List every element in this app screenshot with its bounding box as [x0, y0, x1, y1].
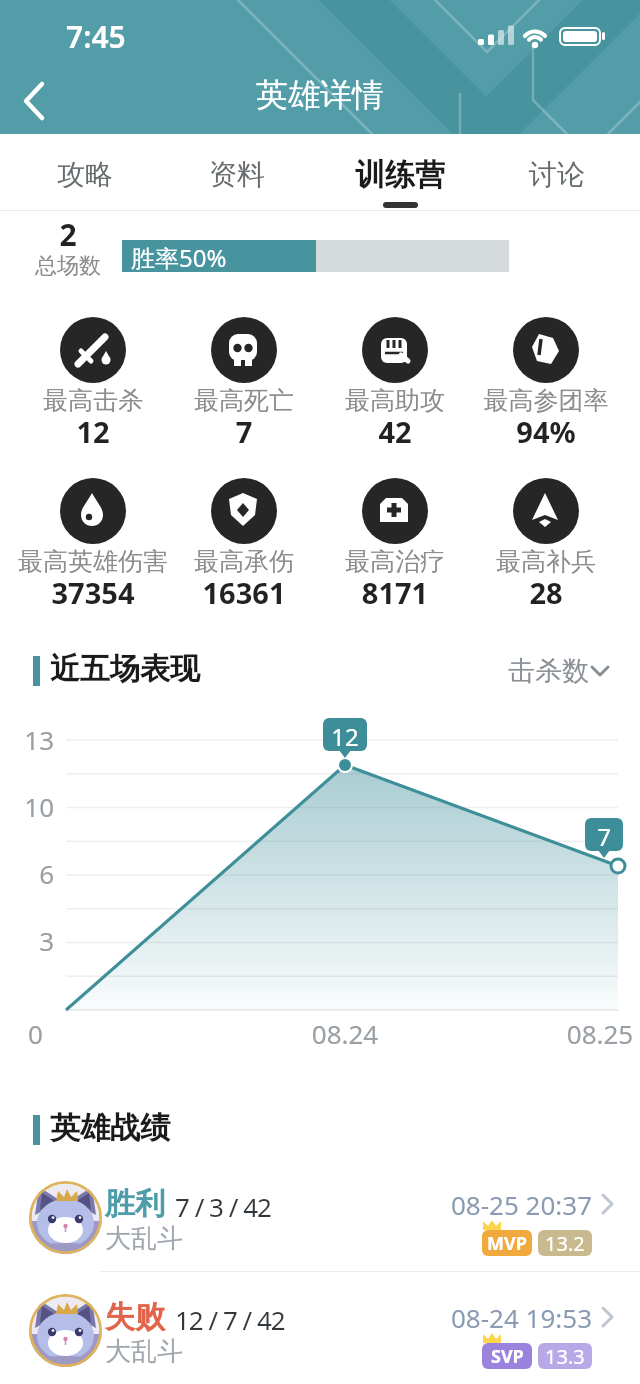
staticText: SVP — [491, 1344, 524, 1369]
staticText: 7 — [585, 820, 623, 853]
staticText: 08-24 19:53 — [420, 1300, 592, 1335]
staticText: 训练营 — [355, 156, 445, 194]
staticText: 攻略 — [57, 157, 113, 192]
staticText: 16361 — [164, 573, 324, 612]
button[interactable]: 讨论 — [497, 134, 617, 211]
button[interactable]: 训练营 — [340, 134, 460, 211]
staticText: 最高击杀 — [13, 385, 173, 416]
staticText: 最高英雄伤害 — [13, 546, 173, 577]
staticText: 8171 — [315, 573, 475, 612]
staticText: 12 — [323, 720, 367, 753]
button[interactable] — [10, 76, 62, 128]
staticText: 大乱斗 — [105, 1335, 183, 1368]
staticText: 击杀数 — [508, 654, 589, 688]
staticText: 08-25 20:37 — [420, 1187, 592, 1222]
staticText: MVP — [487, 1231, 527, 1256]
staticText: 胜利 — [105, 1185, 165, 1223]
staticText: 13.3 — [545, 1343, 585, 1369]
staticText: 12 / 7 / 42 — [175, 1302, 285, 1337]
staticText: 08.24 — [300, 1016, 390, 1051]
staticText: 12 — [13, 412, 173, 451]
staticText: 最高死亡 — [164, 385, 324, 416]
staticText: 最高参团率 — [466, 385, 626, 416]
button[interactable]: 击杀数 — [500, 652, 620, 688]
staticText: 42 — [315, 412, 475, 451]
staticText: 2 — [30, 214, 106, 255]
staticText: 10 — [10, 789, 54, 824]
staticText: 讨论 — [529, 157, 585, 192]
staticText: 最高助攻 — [315, 385, 475, 416]
staticText: 13.2 — [545, 1230, 585, 1256]
staticText: 37354 — [13, 573, 173, 612]
staticText: 7:45 — [66, 16, 126, 57]
staticText: 近五场表现 — [50, 650, 200, 688]
staticText: 英雄战绩 — [50, 1109, 170, 1147]
staticText: 28 — [466, 573, 626, 612]
staticText: 总场数 — [30, 252, 106, 280]
button[interactable]: 胜利 — [0, 1159, 640, 1272]
button[interactable]: 攻略 — [25, 134, 145, 211]
staticText: 94% — [466, 412, 626, 451]
staticText: 7 / 3 / 42 — [175, 1189, 271, 1224]
staticText: 7 — [164, 412, 324, 451]
staticText: 大乱斗 — [105, 1222, 183, 1255]
staticText: 失败 — [105, 1298, 165, 1336]
staticText: 英雄详情 — [220, 75, 420, 115]
staticText: 08.25 — [555, 1016, 640, 1051]
staticText: 最高治疗 — [315, 546, 475, 577]
staticText: 3 — [10, 923, 54, 958]
staticText: 最高承伤 — [164, 546, 324, 577]
staticText: 资料 — [209, 157, 265, 192]
staticText: 胜率50% — [131, 241, 227, 273]
staticText: 6 — [10, 856, 54, 891]
staticText: 0 — [28, 1016, 72, 1051]
button[interactable]: 资料 — [177, 134, 297, 211]
staticText: 最高补兵 — [466, 546, 626, 577]
staticText: 13 — [10, 722, 54, 757]
button[interactable]: 失败 — [0, 1272, 640, 1384]
